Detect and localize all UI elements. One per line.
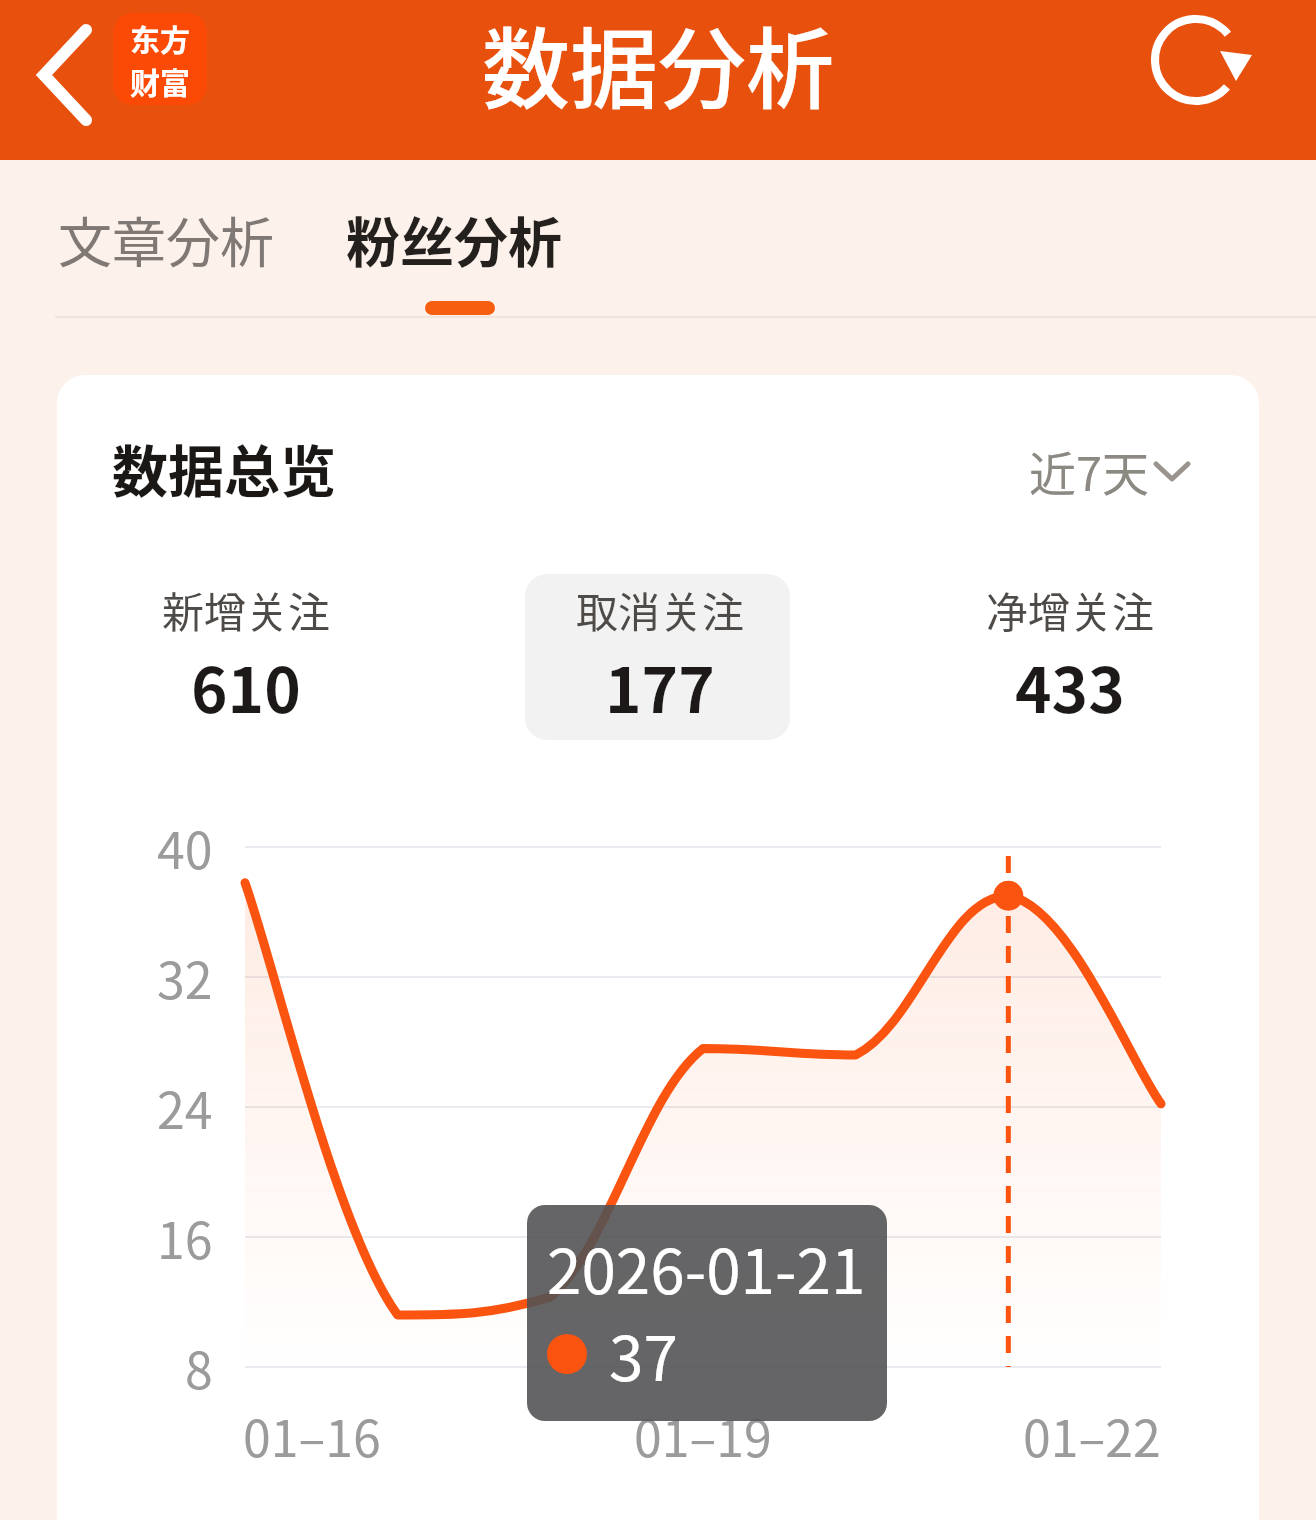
button[interactable] (1140, 4, 1256, 116)
staticText: 24 (157, 1071, 213, 1143)
staticText: 取消关注 (576, 579, 745, 640)
button[interactable]: 取消关注 (490, 578, 830, 738)
staticText: 近7天 (1029, 436, 1150, 504)
staticText: 粉丝分析 (346, 200, 562, 278)
staticText: 177 (605, 641, 715, 731)
staticText: 数据总览 (112, 427, 336, 508)
staticText: 433 (1015, 641, 1125, 731)
staticText: 40 (157, 811, 213, 883)
staticText: 01–22 (1023, 1399, 1161, 1471)
staticText: 数据分析 (482, 0, 835, 126)
staticText: 32 (157, 941, 213, 1013)
staticText: 8 (185, 1331, 213, 1403)
staticText: 37 (609, 1309, 678, 1399)
button[interactable]: 净增关注 (900, 578, 1240, 738)
button[interactable]: 新增关注 (76, 578, 416, 738)
staticText: 财富 (130, 59, 190, 102)
staticText: 净增关注 (986, 579, 1155, 640)
staticText: 01–16 (243, 1399, 381, 1471)
button[interactable]: 文章分析 (58, 194, 298, 284)
staticText: 东方 (130, 16, 190, 59)
button[interactable]: 粉丝分析 (346, 194, 586, 284)
staticText: 2026-01-21 (547, 1222, 866, 1312)
staticText: 16 (157, 1201, 213, 1273)
staticText: 新增关注 (162, 579, 331, 640)
button[interactable] (18, 10, 118, 140)
staticText: 文章分析 (58, 200, 274, 278)
staticText: 01–19 (634, 1399, 772, 1471)
staticText: 610 (191, 641, 301, 731)
button[interactable]: 近7天 (954, 434, 1194, 506)
